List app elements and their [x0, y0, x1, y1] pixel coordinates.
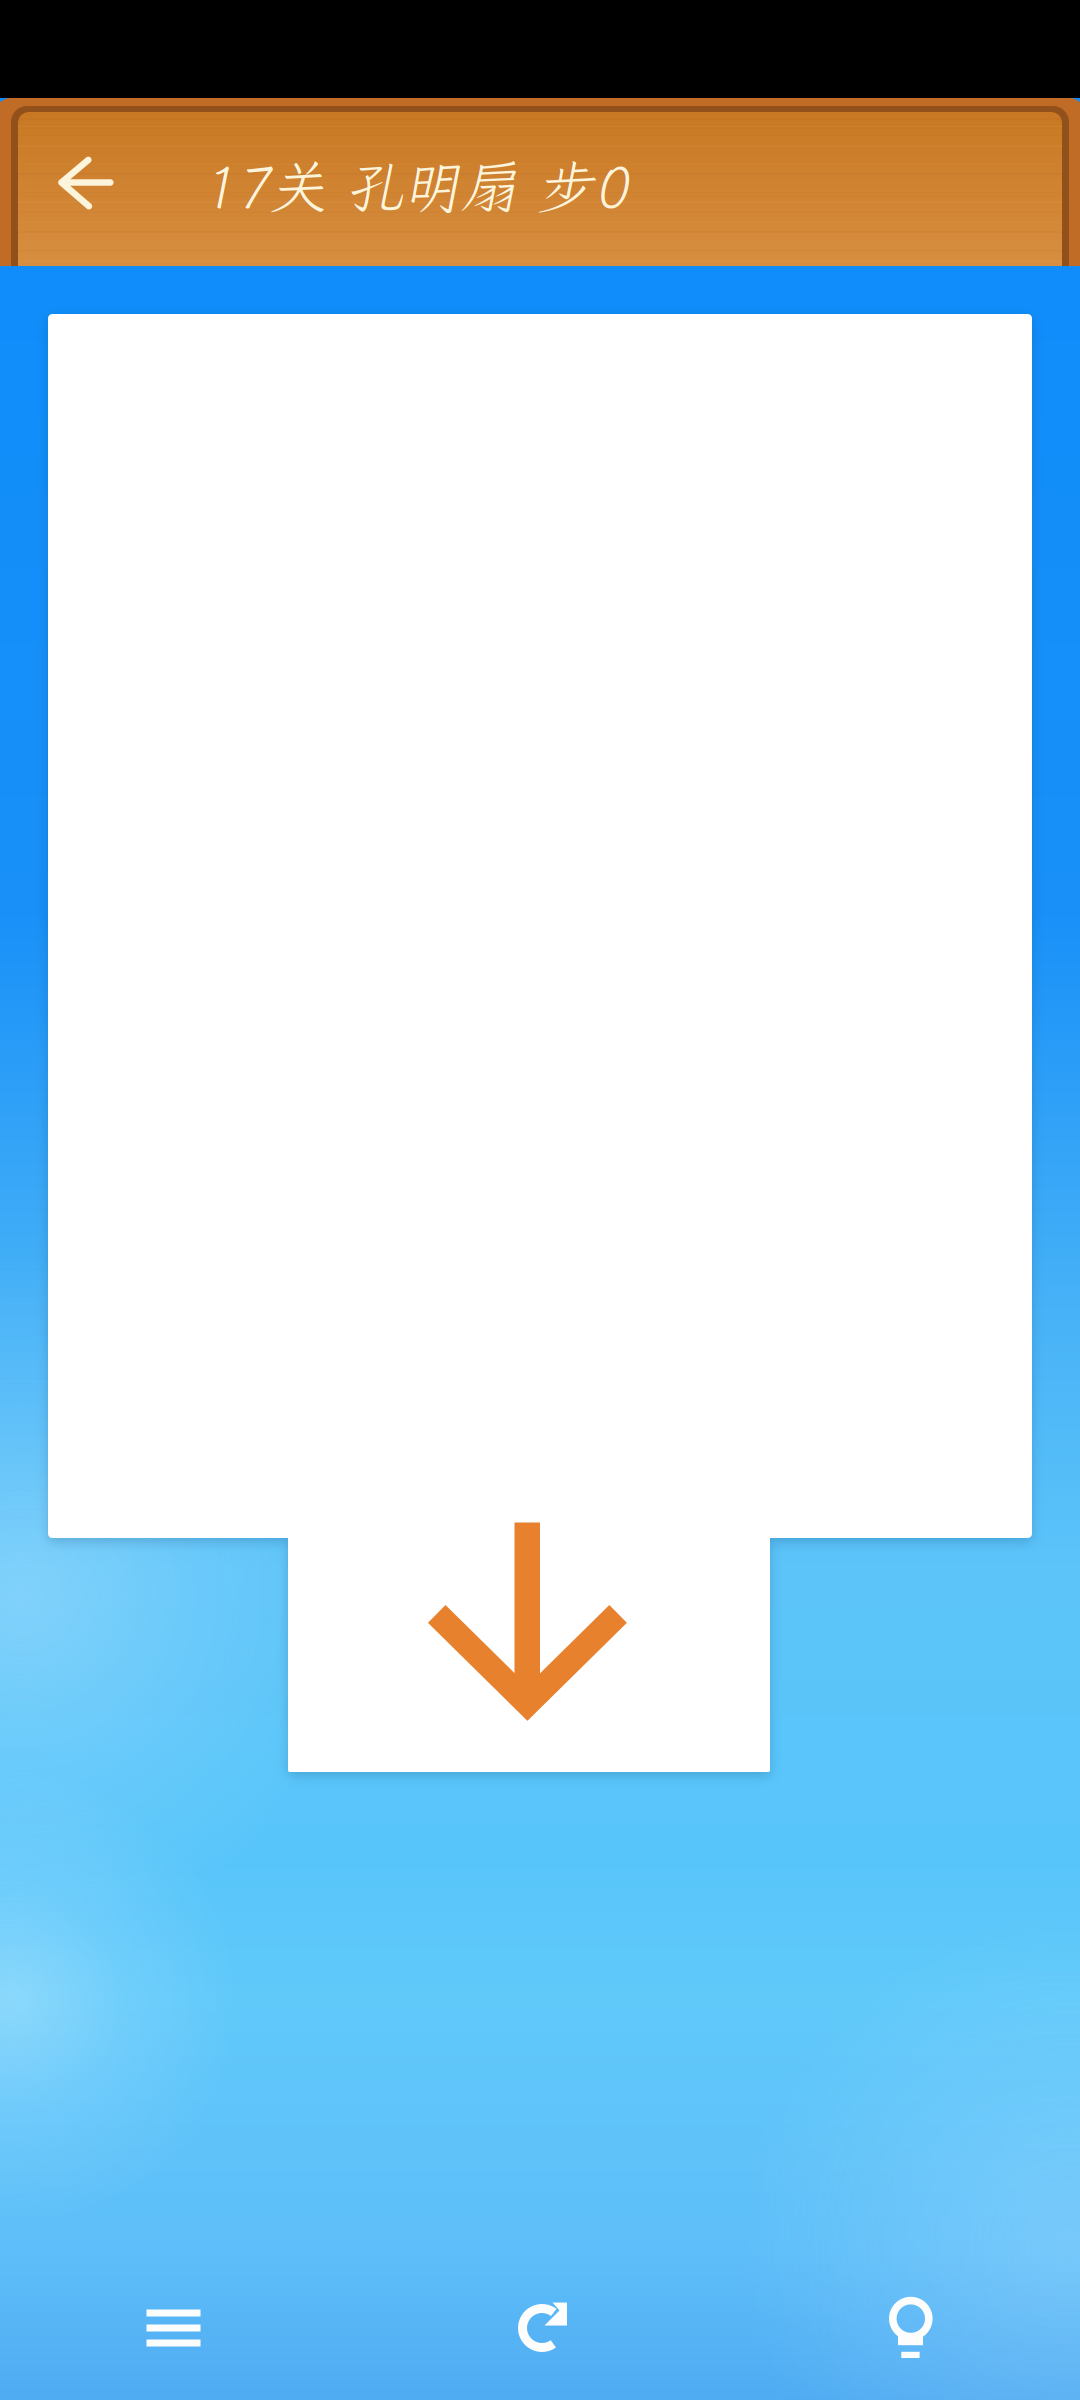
staticText: 17关 孔明扇 步0 [201, 148, 628, 224]
button[interactable]: Back [17, 119, 157, 247]
button[interactable]: Restart [494, 2278, 594, 2378]
button[interactable]: Menu [124, 2278, 224, 2378]
button[interactable]: Hint [861, 2278, 961, 2378]
